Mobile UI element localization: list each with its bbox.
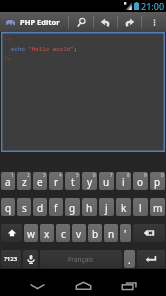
staticText: PHP Editor [20,17,60,27]
button[interactable]: Home [60,269,106,296]
staticText: w [27,227,35,241]
staticText: k [121,201,127,215]
staticText: q [5,201,12,215]
staticText: 8 [127,172,130,178]
button[interactable]: g [65,198,80,216]
button[interactable]: More options [142,12,166,32]
button[interactable]: l [133,198,148,216]
button[interactable]: z [17,172,31,190]
button[interactable]: Backspace [133,224,165,242]
button[interactable]: c [56,224,70,242]
button[interactable]: e [33,172,47,190]
button[interactable]: j [99,198,114,216]
staticText: d [37,201,44,215]
staticText: o [137,175,144,189]
staticText: Français [68,255,94,264]
staticText: v [76,227,82,241]
button[interactable]: w [24,224,38,242]
button[interactable]: i [116,172,131,190]
button[interactable]: Undo [94,12,117,32]
staticText: x [44,227,50,241]
staticText: y [87,175,93,189]
staticText: s [22,201,27,215]
staticText: r [54,175,59,189]
staticText: 0 [161,172,164,178]
button[interactable]: u [99,172,114,190]
button[interactable]: . [124,250,135,268]
staticText: 3 [43,172,46,178]
staticText: i [122,175,125,189]
button[interactable]: r [49,172,63,190]
button[interactable]: a [1,172,15,190]
button[interactable]: k [116,198,131,216]
button[interactable]: n [104,224,118,242]
button[interactable]: m [150,198,165,216]
staticText: p [154,175,161,189]
button[interactable]: Redo [118,12,141,32]
staticText: e [37,175,43,189]
staticText: b [92,227,99,241]
button[interactable]: o [133,172,148,190]
button[interactable]: v [72,224,86,242]
button[interactable]: ?123 [1,250,21,268]
staticText: m [153,201,163,215]
staticText: <? echo "Hello world"; ?> [4,36,78,63]
staticText: f [54,201,58,215]
button[interactable]: Français [40,250,122,268]
button[interactable]: h [82,198,97,216]
button[interactable]: t [65,172,80,190]
button[interactable]: Enter [137,250,165,268]
staticText: ' [124,227,127,241]
button[interactable]: f [49,198,63,216]
button[interactable]: x [40,224,54,242]
staticText: a [5,175,11,189]
button[interactable]: b [88,224,102,242]
staticText: h [86,201,93,215]
staticText: n [108,227,115,241]
staticText: 4 [59,172,62,178]
staticText: . [128,253,131,267]
button[interactable]: q [1,198,15,216]
button[interactable]: d [33,198,47,216]
button[interactable]: Recents [106,269,152,296]
staticText: ?123 [4,255,18,263]
button[interactable]: Shift [1,224,22,242]
button[interactable]: Back [14,269,60,296]
staticText: 6 [93,172,96,178]
staticText: j [105,201,108,215]
staticText: z [22,175,27,189]
button[interactable]: y [82,172,97,190]
staticText: 2 [27,172,30,178]
staticText: l [139,201,142,215]
staticText: t [71,175,75,189]
staticText: 7 [110,172,113,178]
button[interactable]: s [17,198,31,216]
button[interactable]: PHP Editor [0,12,64,32]
button[interactable]: ' [120,224,131,242]
staticText: c [61,227,66,241]
staticText: g [69,201,76,215]
button[interactable]: Search [69,12,93,32]
staticText: 5 [76,172,79,178]
staticText: u [103,175,110,189]
button[interactable]: Voice input [23,250,38,268]
staticText: 9 [144,172,147,178]
button[interactable]: p [150,172,165,190]
staticText: 1 [11,172,14,178]
staticText: 21:00 [141,0,165,12]
